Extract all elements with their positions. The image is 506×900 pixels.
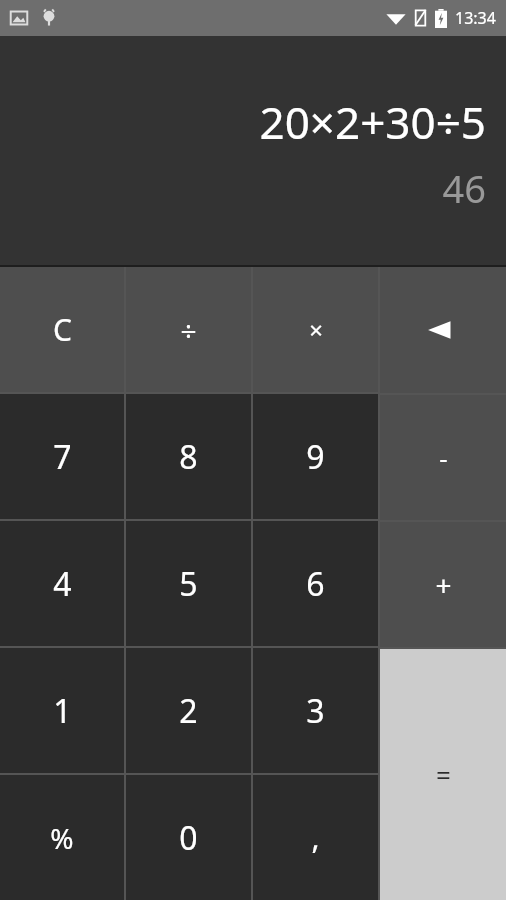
staticText: 3: [306, 689, 325, 733]
button[interactable]: 9: [253, 394, 378, 519]
button[interactable]: ÷: [126, 267, 251, 392]
button[interactable]: -: [380, 395, 506, 520]
staticText: 5: [179, 562, 198, 606]
button[interactable]: =: [380, 649, 506, 900]
button[interactable]: 4: [0, 521, 124, 646]
button[interactable]: 8: [126, 394, 251, 519]
staticText: ×: [309, 313, 323, 346]
staticText: ÷: [180, 311, 197, 349]
button[interactable]: %: [0, 775, 124, 900]
staticText: =: [436, 757, 451, 792]
staticText: C: [53, 309, 72, 350]
staticText: 0: [179, 816, 198, 860]
staticText: 4: [53, 562, 72, 606]
staticText: 46: [442, 162, 486, 214]
staticText: 2: [179, 689, 198, 733]
button[interactable]: ,: [253, 775, 378, 900]
staticText: 13:34: [455, 7, 496, 29]
staticText: 7: [53, 435, 72, 479]
button[interactable]: +: [380, 522, 506, 647]
button[interactable]: ×: [253, 267, 378, 392]
staticText: 8: [179, 435, 198, 479]
staticText: 6: [306, 562, 325, 606]
button[interactable]: 6: [253, 521, 378, 646]
button[interactable]: Backspace: [380, 267, 506, 393]
button[interactable]: 0: [126, 775, 251, 900]
staticText: +: [435, 566, 452, 604]
button[interactable]: 7: [0, 394, 124, 519]
staticText: ,: [311, 817, 320, 858]
button[interactable]: 5: [126, 521, 251, 646]
staticText: 1: [53, 689, 72, 733]
staticText: -: [439, 440, 448, 475]
button[interactable]: 1: [0, 648, 124, 773]
button[interactable]: 3: [253, 648, 378, 773]
button[interactable]: 2: [126, 648, 251, 773]
button[interactable]: C: [0, 267, 124, 392]
staticText: %: [50, 819, 74, 857]
staticText: 20×2+30÷5: [259, 92, 486, 152]
staticText: 9: [306, 435, 325, 479]
